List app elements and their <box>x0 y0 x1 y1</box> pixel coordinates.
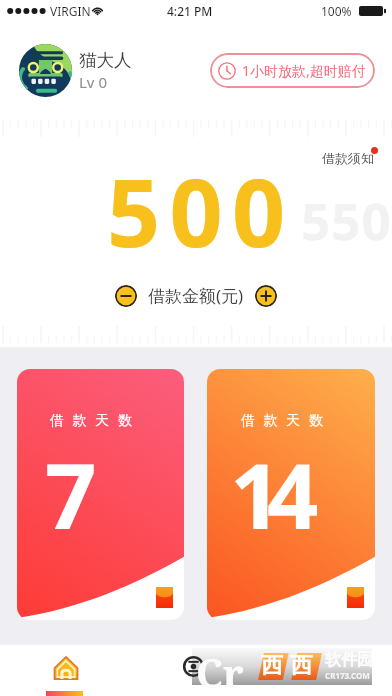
staticText: 7 <box>45 433 83 556</box>
button[interactable]: 借款须知 <box>322 150 374 166</box>
staticText: 100% <box>321 3 352 19</box>
staticText: 550 <box>301 185 392 254</box>
staticText: 500 <box>107 148 295 248</box>
staticText: 借款须知 <box>322 150 374 166</box>
staticText: Cr <box>196 645 244 696</box>
staticText: 猫大人 <box>79 49 132 71</box>
staticText: 4:21 PM <box>167 3 213 19</box>
staticText: 借款天数 <box>241 412 332 430</box>
button[interactable]: Increase amount <box>255 285 277 307</box>
staticText: 软件园 <box>325 650 373 670</box>
button[interactable]: Home <box>47 645 84 696</box>
staticText: 借款天数 <box>50 412 141 430</box>
staticText: CR173.COM <box>325 670 370 681</box>
button[interactable]: 借款天数 <box>17 369 184 620</box>
staticText: 14 <box>230 433 305 556</box>
staticText: 借款金额(元) <box>148 284 244 307</box>
button[interactable]: Decrease amount <box>115 285 137 307</box>
button[interactable]: 借款天数 <box>207 369 375 620</box>
staticText: 西西 <box>261 652 320 680</box>
staticText: VIRGIN <box>50 3 91 19</box>
button[interactable]: 1小时放款,超时赔付 <box>210 53 375 88</box>
staticText: 1小时放款,超时赔付 <box>242 61 366 80</box>
staticText: Lv 0 <box>79 72 107 92</box>
